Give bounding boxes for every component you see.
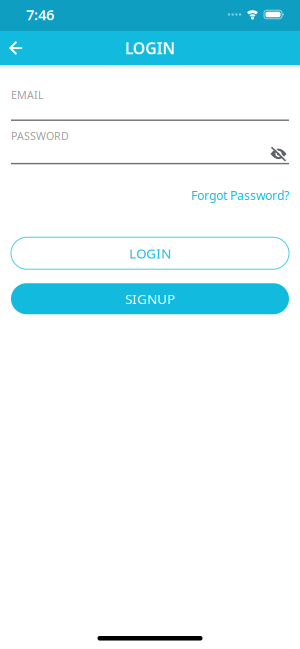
- staticText: LOGIN: [125, 37, 175, 59]
- button[interactable]: Forgot Password?: [191, 187, 289, 203]
- staticText: EMAIL: [11, 88, 44, 102]
- button[interactable]: Show password: [270, 147, 289, 161]
- staticText: PASSWORD: [11, 129, 69, 143]
- button[interactable]: LOGIN: [11, 237, 289, 269]
- button[interactable]: SIGNUP: [11, 283, 289, 314]
- button[interactable]: Back: [0, 31, 35, 65]
- staticText: LOGIN: [129, 244, 171, 262]
- staticText: Forgot Password?: [191, 187, 289, 203]
- staticText: SIGNUP: [125, 290, 175, 308]
- staticText: 7:46: [26, 5, 54, 24]
